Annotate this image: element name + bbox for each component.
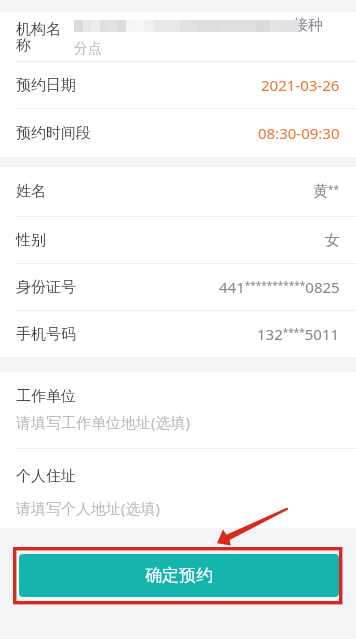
staticText: 姓名: [16, 182, 46, 201]
staticText: 2021-03-26: [261, 75, 340, 95]
staticText: 132****5011: [257, 324, 340, 344]
button[interactable]: 工作单位: [0, 372, 356, 448]
button[interactable]: 个人住址: [0, 449, 356, 528]
staticText: 请填写工作单位地址(选填): [16, 412, 191, 432]
button[interactable]: 预约时间段: [0, 109, 356, 157]
staticText: 性别: [16, 231, 46, 250]
staticText: 请填写个人地址(选填): [16, 498, 161, 518]
button[interactable]: 性别: [0, 217, 356, 263]
button[interactable]: 姓名: [0, 167, 356, 216]
staticText: 确定预约: [145, 565, 213, 586]
button[interactable]: 确定预约: [19, 554, 339, 597]
button[interactable]: 身份证号: [0, 264, 356, 310]
staticText: 女: [325, 231, 340, 250]
staticText: 441***********0825: [219, 277, 340, 297]
staticText: 预约日期: [16, 76, 76, 95]
button[interactable]: 手机号码: [0, 311, 356, 357]
staticText: 08:30-09:30: [258, 123, 340, 143]
staticText: 个人住址: [16, 467, 76, 486]
staticText: 机构名称: [16, 20, 62, 54]
staticText: 黄**: [313, 182, 340, 201]
staticText: 手机号码: [16, 325, 76, 344]
staticText: 分点: [74, 40, 102, 58]
button[interactable]: 机构名称: [0, 12, 356, 61]
staticText: 身份证号: [16, 278, 76, 297]
staticText: 预约时间段: [16, 124, 91, 143]
button[interactable]: 预约日期: [0, 62, 356, 108]
staticText: 工作单位: [16, 387, 76, 406]
staticText: 接种: [293, 16, 323, 35]
